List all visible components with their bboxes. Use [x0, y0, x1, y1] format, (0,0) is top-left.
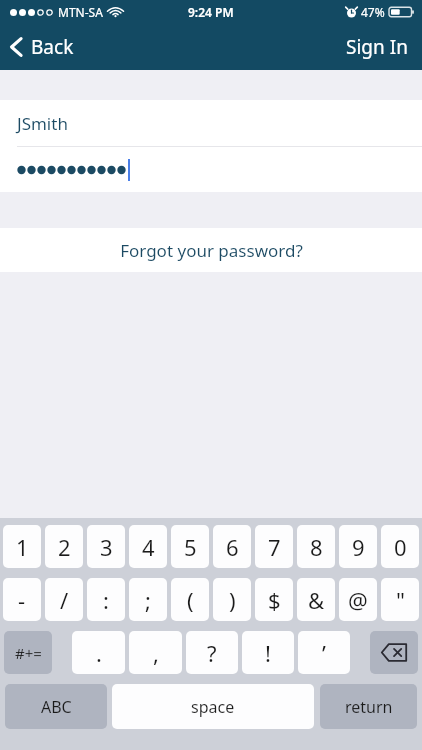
staticText: space [191, 696, 235, 718]
staticText: 2 [58, 532, 71, 562]
staticText: $ [268, 585, 281, 615]
button[interactable]: ABC [5, 684, 107, 729]
staticText: 47% [361, 4, 385, 20]
button[interactable]: 4 [129, 525, 167, 568]
button[interactable]: space [112, 684, 314, 729]
staticText: : [103, 585, 109, 615]
staticText: ! [265, 638, 271, 668]
staticText: 0 [394, 532, 407, 562]
staticText: , [153, 638, 159, 668]
button[interactable]: - [3, 578, 41, 621]
staticText: JSmith [17, 112, 68, 135]
staticText: ; [145, 585, 151, 615]
staticText: #+= [15, 643, 42, 663]
staticText: ( [187, 585, 194, 615]
button[interactable]: . [72, 631, 125, 674]
button[interactable]: ’ [298, 631, 350, 674]
staticText: . [96, 638, 102, 668]
button[interactable]: 8 [297, 525, 335, 568]
button[interactable]: ; [129, 578, 167, 621]
staticText: @ [348, 585, 368, 615]
staticText: 4 [142, 532, 155, 562]
button[interactable]: ( [171, 578, 209, 621]
button[interactable]: ! [242, 631, 294, 674]
staticText: ’ [322, 638, 326, 668]
button[interactable]: ? [186, 631, 238, 674]
staticText: Sign In [346, 34, 408, 60]
staticText: Forgot your password? [120, 239, 303, 262]
button[interactable]: 7 [255, 525, 293, 568]
button[interactable]: : [87, 578, 125, 621]
button[interactable]: $ [255, 578, 293, 621]
button[interactable]: , [129, 631, 182, 674]
button[interactable]: & [297, 578, 335, 621]
staticText: ABC [41, 696, 72, 718]
button[interactable]: / [45, 578, 83, 621]
button[interactable]: JSmith [0, 100, 422, 146]
button[interactable]: #+= [4, 631, 52, 674]
button[interactable]: " [381, 578, 419, 621]
button[interactable] [0, 147, 422, 192]
staticText: 7 [268, 532, 281, 562]
button[interactable]: 5 [171, 525, 209, 568]
button[interactable]: Forgot your password? [0, 228, 422, 272]
button[interactable]: ) [213, 578, 251, 621]
staticText: 5 [184, 532, 197, 562]
staticText: 3 [100, 532, 113, 562]
staticText: - [18, 585, 26, 615]
staticText: 8 [310, 532, 323, 562]
staticText: " [396, 585, 405, 615]
staticText: ? [207, 638, 217, 668]
staticText: 9 [352, 532, 365, 562]
button[interactable]: Back [0, 28, 86, 66]
staticText: 9:24 PM [188, 4, 234, 20]
button[interactable]: Backspace [370, 631, 418, 674]
staticText: Back [31, 34, 74, 60]
staticText: / [60, 585, 69, 615]
button[interactable]: 2 [45, 525, 83, 568]
staticText: MTN-SA [58, 4, 103, 20]
staticText: 1 [16, 532, 29, 562]
staticText: & [308, 585, 325, 615]
staticText: return [345, 696, 393, 718]
button[interactable]: Sign In [332, 26, 422, 68]
staticText: ) [229, 585, 236, 615]
button[interactable]: 3 [87, 525, 125, 568]
staticText: 6 [226, 532, 239, 562]
button[interactable]: return [320, 684, 417, 729]
button[interactable]: 6 [213, 525, 251, 568]
button[interactable]: 1 [3, 525, 41, 568]
button[interactable]: @ [339, 578, 377, 621]
button[interactable]: 9 [339, 525, 377, 568]
button[interactable]: 0 [381, 525, 419, 568]
